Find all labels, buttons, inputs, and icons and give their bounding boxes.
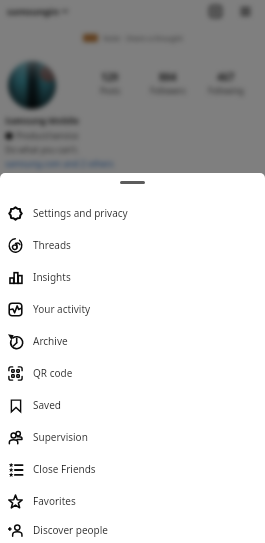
staticText: Following <box>208 85 245 96</box>
staticText: Your activity <box>33 302 91 316</box>
staticText: Samsung Mobile <box>5 114 79 126</box>
staticText: 129 <box>101 70 119 84</box>
button[interactable]: QR code <box>0 357 265 389</box>
staticText: Threads <box>33 238 71 252</box>
staticText: Discover people <box>33 523 108 537</box>
button[interactable]: Settings and privacy <box>0 197 265 229</box>
button[interactable]: Threads <box>0 229 265 261</box>
staticText: Followers <box>150 85 186 96</box>
button[interactable]: Supervision <box>0 421 265 453</box>
button[interactable]: Archive <box>0 325 265 357</box>
staticText: Saved <box>33 398 61 412</box>
button[interactable]: Your activity <box>0 293 265 325</box>
staticText: QR code <box>33 366 73 380</box>
button[interactable]: Saved <box>0 389 265 421</box>
staticText: Posts <box>100 85 121 96</box>
staticText: Close Friends <box>33 462 96 476</box>
button[interactable]: Close Friends <box>0 453 265 485</box>
button[interactable]: Insights <box>0 261 265 293</box>
staticText: Do what you can't. <box>5 144 79 156</box>
staticText: samsung.com and 2 others <box>5 158 114 170</box>
staticText: samsungin <box>7 5 59 18</box>
staticText: 884 <box>159 70 177 84</box>
staticText: 467 <box>217 70 235 84</box>
staticText: Insights <box>33 270 71 284</box>
button[interactable]: Discover people <box>0 517 265 543</box>
staticText: Product/service <box>16 130 79 142</box>
button[interactable]: Favorites <box>0 485 265 517</box>
staticText: Supervision <box>33 430 88 444</box>
staticText: Note · Share a thought <box>103 33 183 43</box>
staticText: Archive <box>33 334 68 348</box>
staticText: Settings and privacy <box>33 206 128 220</box>
staticText: Favorites <box>33 494 76 508</box>
